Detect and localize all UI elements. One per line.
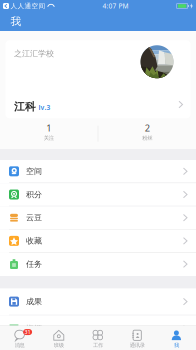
button[interactable]: 消息 xyxy=(0,325,39,350)
staticText: 通讯录 xyxy=(130,342,145,348)
staticText: 积分 xyxy=(26,190,42,199)
button[interactable]: 通讯录 xyxy=(118,325,157,350)
button[interactable]: 我 xyxy=(157,325,196,350)
button[interactable]: 任务 xyxy=(0,253,196,276)
button[interactable]: 之江汇学校 xyxy=(5,40,190,118)
staticText: 收藏 xyxy=(26,236,42,246)
button[interactable]: 云豆 xyxy=(0,206,196,230)
staticText: 1 xyxy=(46,122,51,134)
staticText: 31 xyxy=(25,328,31,336)
staticText: 2 xyxy=(145,122,150,134)
button[interactable]: 积分 xyxy=(0,183,196,206)
staticText: 资源 xyxy=(26,324,42,333)
staticText: 消息 xyxy=(15,342,25,348)
staticText: 空间 xyxy=(26,166,42,176)
button[interactable]: 空间 xyxy=(0,160,196,183)
staticText: 江科 xyxy=(14,100,36,113)
staticText: 班级 xyxy=(54,342,64,348)
button[interactable]: 2 xyxy=(98,118,196,149)
staticText: 成果 xyxy=(26,297,42,306)
staticText: 人人通空间 xyxy=(10,2,45,10)
staticText: 我 xyxy=(10,15,21,28)
staticText: 关注 xyxy=(44,135,54,141)
button[interactable]: 成果 xyxy=(0,288,196,315)
staticText: 之江汇学校 xyxy=(14,49,54,59)
staticText: 工作 xyxy=(93,342,103,348)
staticText: 云豆 xyxy=(26,213,42,223)
button[interactable]: 1 xyxy=(0,118,98,149)
button[interactable]: 资源 xyxy=(0,315,196,342)
staticText: 4:07 PM xyxy=(102,2,128,10)
button[interactable]: 工作 xyxy=(78,325,118,350)
staticText: lv.3 xyxy=(38,103,50,112)
staticText: 任务 xyxy=(26,259,42,269)
staticText: 我 xyxy=(174,342,179,348)
button[interactable]: 班级 xyxy=(39,325,78,350)
staticText: 粉丝 xyxy=(142,135,152,141)
button[interactable]: 收藏 xyxy=(0,230,196,253)
